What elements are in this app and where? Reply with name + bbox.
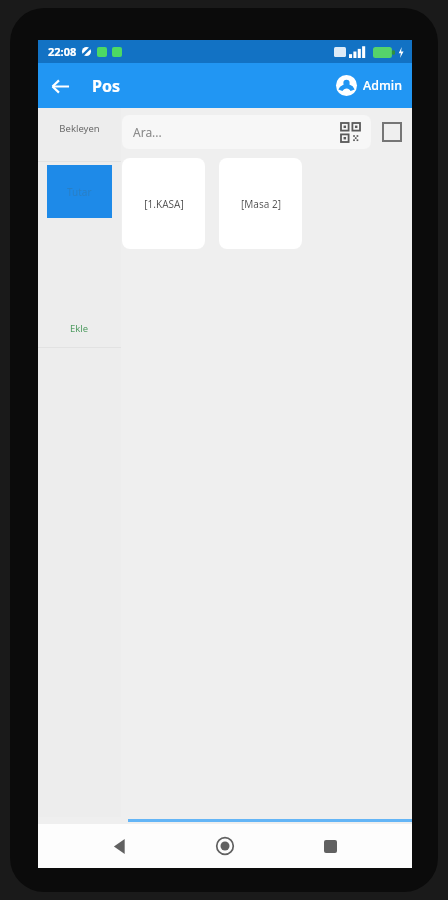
staticText: Ekle [70, 322, 89, 335]
staticText: [Masa 2] [241, 197, 281, 211]
staticText: 22:08 [48, 44, 77, 59]
button[interactable]: Home [202, 824, 248, 868]
button[interactable]: Admin [336, 63, 412, 108]
button[interactable]: [1.KASA] [122, 158, 205, 249]
staticText: Bekleyen [59, 122, 100, 135]
button[interactable]: Tutar [47, 165, 112, 218]
staticText: Ara... [133, 124, 162, 140]
staticText: Pos [92, 75, 120, 97]
button[interactable]: Bekleyen [38, 108, 121, 148]
button[interactable]: Ekle [38, 313, 121, 343]
staticText: Admin [363, 77, 402, 94]
button[interactable]: Scan QR code [341, 123, 360, 142]
button[interactable]: Ara... [122, 115, 371, 149]
button[interactable]: Recent apps [307, 824, 353, 868]
staticText: [1.KASA] [144, 197, 184, 211]
button[interactable]: Back [97, 824, 143, 868]
button[interactable]: Back [38, 64, 82, 108]
button[interactable]: [Masa 2] [219, 158, 302, 249]
button[interactable]: Select all [382, 122, 402, 142]
staticText: Tutar [67, 185, 92, 199]
